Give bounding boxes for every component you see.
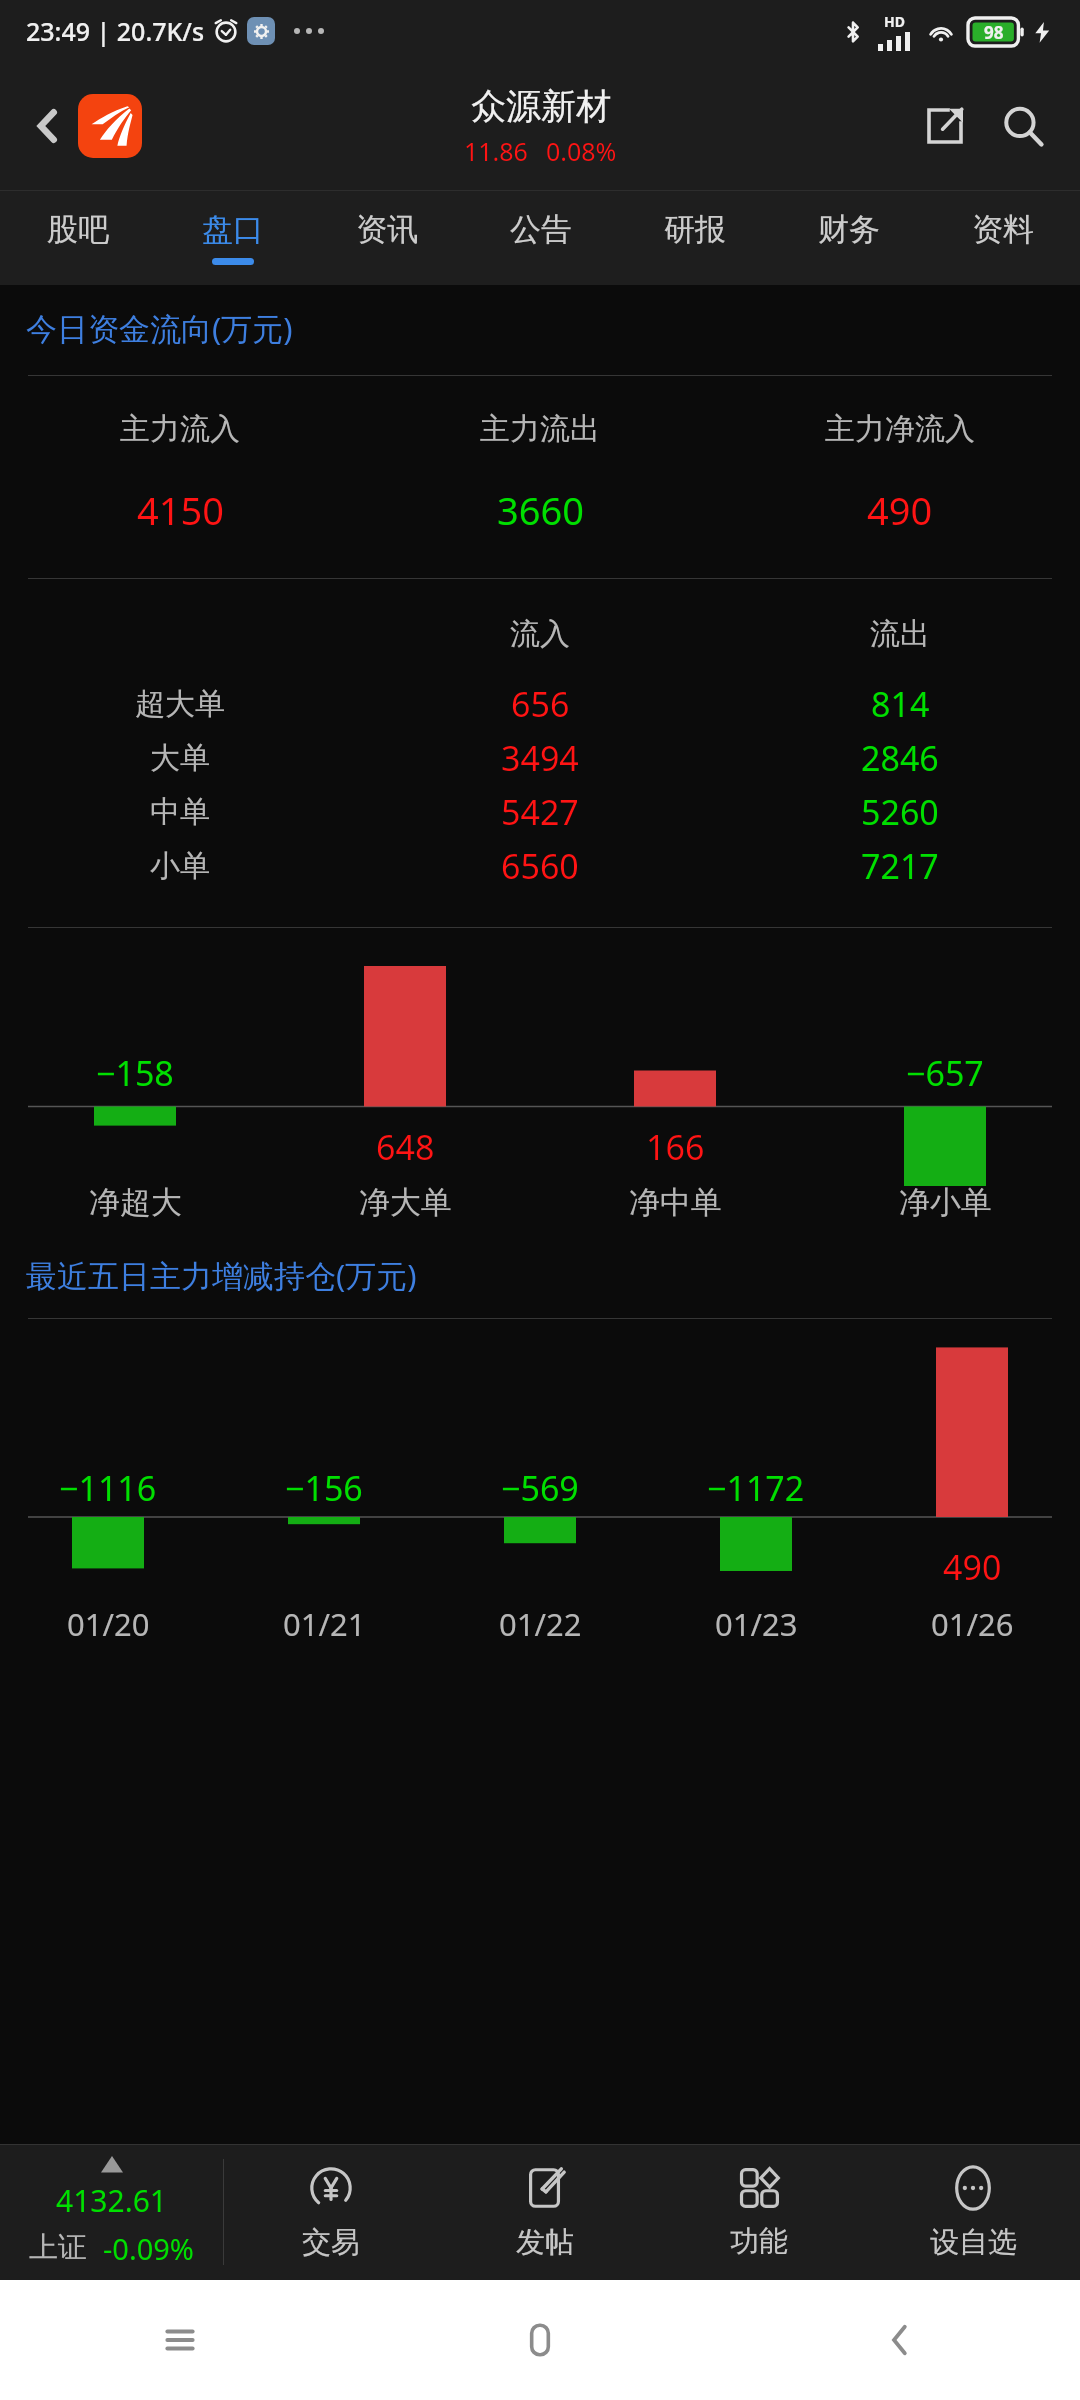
button[interactable]: Home [509, 2309, 571, 2371]
staticText: 490 [943, 1544, 1002, 1590]
staticText: 净大单 [359, 1183, 452, 1222]
staticText: 11.86 [464, 134, 528, 168]
staticText: 01/26 [931, 1603, 1014, 1645]
button[interactable]: 资讯 [310, 190, 464, 285]
button[interactable]: Recents [149, 2309, 211, 2371]
button[interactable]: 盘口 [155, 190, 310, 285]
button[interactable]: 资料 [926, 190, 1080, 285]
staticText: 设自选 [930, 2224, 1017, 2261]
button[interactable]: 交易 [224, 2144, 438, 2280]
staticText: 资讯 [356, 210, 418, 249]
button[interactable]: Search [990, 93, 1056, 159]
staticText: 资料 [972, 210, 1034, 249]
staticText: 功能 [730, 2223, 788, 2260]
staticText: 发帖 [516, 2224, 574, 2261]
staticText: 0.08% [546, 134, 617, 168]
staticText: 净超大 [89, 1183, 182, 1222]
staticText: −657 [906, 1050, 984, 1096]
staticText: −1172 [707, 1465, 805, 1511]
button[interactable]: 发帖 [438, 2144, 652, 2280]
staticText: 流入 [510, 615, 570, 653]
button[interactable]: 公告 [464, 190, 618, 285]
staticText: 3660 [497, 484, 584, 536]
staticText: 股吧 [47, 210, 109, 249]
staticText: 交易 [302, 2224, 360, 2261]
staticText: 公告 [510, 210, 572, 249]
staticText: HD [884, 12, 905, 31]
staticText: 814 [871, 681, 930, 727]
staticText: 6560 [501, 843, 579, 889]
staticText: 小单 [150, 847, 210, 885]
staticText: 盘口 [202, 210, 264, 249]
staticText: -0.09% [103, 2229, 194, 2268]
button[interactable]: 设自选 [866, 2144, 1080, 2280]
button[interactable]: 研报 [618, 190, 772, 285]
staticText: −1116 [59, 1465, 157, 1511]
staticText: 4132.61 [56, 2180, 167, 2221]
staticText: 中单 [150, 793, 210, 831]
staticText: 01/22 [499, 1603, 582, 1645]
staticText: 净中单 [629, 1183, 722, 1222]
staticText: 2846 [861, 735, 939, 781]
staticText: 01/23 [715, 1603, 798, 1645]
staticText: 23:49 | 20.7K/s [26, 14, 205, 48]
staticText: 最近五日主力增减持仓(万元) [26, 1254, 417, 1296]
staticText: 166 [646, 1124, 705, 1170]
staticText: 主力净流入 [825, 410, 975, 448]
button[interactable]: Back [869, 2309, 931, 2371]
staticText: 众源新材 [471, 84, 611, 128]
staticText: 今日资金流向(万元) [26, 307, 293, 349]
staticText: 656 [511, 681, 570, 727]
staticText: 净小单 [899, 1183, 992, 1222]
staticText: 3494 [501, 735, 579, 781]
button[interactable]: 财务 [772, 190, 926, 285]
staticText: 5260 [861, 789, 939, 835]
staticText: 01/21 [283, 1603, 366, 1645]
staticText: 7217 [861, 843, 939, 889]
staticText: 财务 [818, 210, 880, 249]
button[interactable]: 股吧 [0, 190, 155, 285]
button[interactable]: 4132.61 [0, 2144, 223, 2280]
button[interactable]: App logo [78, 94, 142, 158]
staticText: −569 [501, 1465, 579, 1511]
staticText: 490 [867, 484, 933, 536]
staticText: 超大单 [135, 685, 225, 723]
staticText: −156 [285, 1465, 363, 1511]
staticText: 5427 [501, 789, 579, 835]
button[interactable]: 功能 [652, 2144, 866, 2280]
staticText: 主力流出 [480, 410, 600, 448]
staticText: 01/20 [67, 1603, 150, 1645]
staticText: −158 [96, 1050, 174, 1096]
staticText: 大单 [150, 739, 210, 777]
staticText: 研报 [664, 210, 726, 249]
staticText: 上证 [29, 2229, 87, 2266]
staticText: 4150 [137, 484, 224, 536]
staticText: 98 [984, 21, 1004, 44]
staticText: 流出 [870, 615, 930, 653]
button[interactable]: Share [912, 93, 978, 159]
staticText: 主力流入 [120, 410, 240, 448]
staticText: 648 [376, 1124, 435, 1170]
button[interactable]: Back [18, 96, 78, 156]
